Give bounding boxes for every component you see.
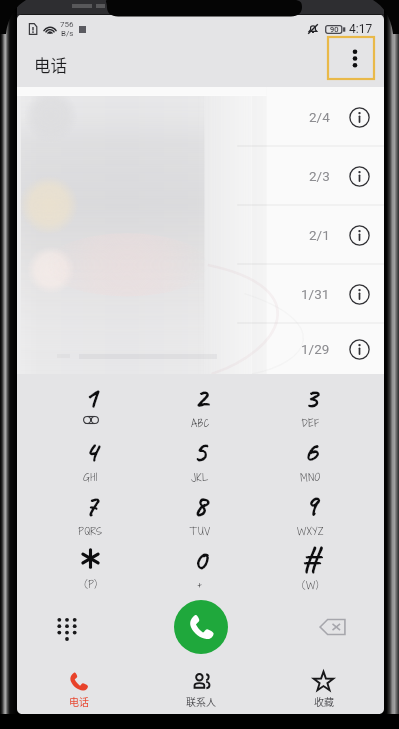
button[interactable]: 2/4 xyxy=(17,87,384,146)
button[interactable]: Call xyxy=(174,600,228,654)
staticText: DEF xyxy=(301,416,320,431)
staticText: 756 xyxy=(60,20,74,29)
staticText: 2/4 xyxy=(309,109,330,125)
staticText: 2/1 xyxy=(309,227,330,243)
button[interactable]: 联系人 xyxy=(140,664,262,714)
staticText: 电话 xyxy=(69,694,89,708)
button[interactable]: 6 xyxy=(255,428,365,482)
staticText: 9 xyxy=(304,486,318,524)
staticText: MNO xyxy=(300,470,321,485)
staticText: (W) xyxy=(302,578,319,593)
button[interactable]: Call details xyxy=(342,277,376,311)
staticText: 2 xyxy=(194,378,208,416)
button[interactable]: # xyxy=(255,536,365,590)
button[interactable]: Call details xyxy=(342,159,376,193)
button[interactable]: 1 xyxy=(36,374,145,428)
staticText: 联系人 xyxy=(186,694,216,708)
button[interactable]: 2/3 xyxy=(17,146,384,205)
button[interactable]: 1/31 xyxy=(17,264,384,323)
button[interactable]: Call details xyxy=(342,332,376,366)
button[interactable]: 9 xyxy=(255,482,365,536)
button[interactable]: Call details xyxy=(342,218,376,252)
staticText: GHI xyxy=(83,470,98,485)
staticText: B/s xyxy=(61,29,74,38)
staticText: PQRS xyxy=(78,524,103,539)
button[interactable]: Call details xyxy=(342,100,376,134)
button[interactable]: Hide dialpad xyxy=(17,590,140,664)
button[interactable]: 4 xyxy=(36,428,145,482)
staticText: 8 xyxy=(193,486,207,524)
button[interactable]: 收藏 xyxy=(262,664,384,714)
staticText: 1/29 xyxy=(301,341,330,357)
staticText: 收藏 xyxy=(314,694,334,708)
staticText: 90 xyxy=(330,25,339,34)
staticText: 电话 xyxy=(34,53,67,77)
staticText: 0 xyxy=(193,540,207,578)
staticText: + xyxy=(197,578,203,593)
button[interactable]: 5 xyxy=(145,428,255,482)
button[interactable]: Backspace xyxy=(262,590,384,664)
staticText: 5 xyxy=(193,432,207,470)
staticText: 1/31 xyxy=(301,286,330,302)
button[interactable]: (P) xyxy=(36,536,145,590)
staticText: 4:17 xyxy=(349,22,373,36)
staticText: JKL xyxy=(191,470,209,485)
button[interactable]: 电话 xyxy=(17,664,140,714)
button[interactable]: 8 xyxy=(145,482,255,536)
staticText: 6 xyxy=(304,432,318,470)
staticText: 3 xyxy=(304,378,318,416)
button[interactable]: 3 xyxy=(255,374,365,428)
button[interactable]: 7 xyxy=(36,482,145,536)
button[interactable]: 1/29 xyxy=(17,323,384,374)
staticText: 7 xyxy=(84,486,98,524)
staticText: WXYZ xyxy=(297,524,324,539)
button[interactable]: More options xyxy=(327,36,375,80)
staticText: (P) xyxy=(84,577,98,592)
staticText: ABC xyxy=(191,416,210,431)
staticText: 1 xyxy=(84,378,98,416)
button[interactable]: 2 xyxy=(145,374,255,428)
staticText: 2/3 xyxy=(309,168,330,184)
staticText: 4 xyxy=(84,432,98,470)
staticText: # xyxy=(302,540,319,578)
button[interactable]: 0 xyxy=(145,536,255,590)
button[interactable]: 2/1 xyxy=(17,205,384,264)
staticText: TUV xyxy=(189,524,211,539)
